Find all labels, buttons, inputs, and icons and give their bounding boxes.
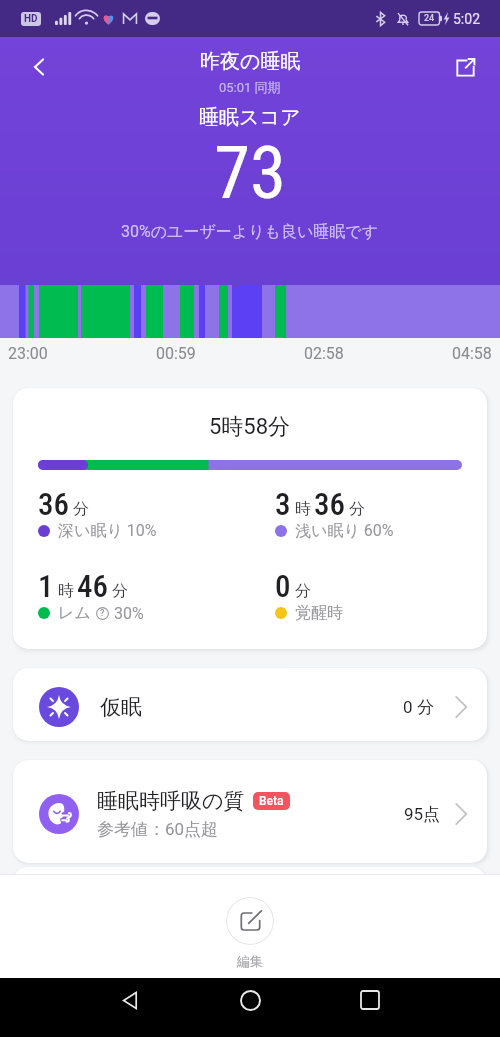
staticText: 5時58分 <box>209 413 291 441</box>
staticText: HD <box>24 13 38 25</box>
staticText: 04:58 <box>452 344 492 363</box>
staticText: 時 <box>58 581 74 601</box>
staticText: 5:02 <box>453 11 480 27</box>
staticText: 参考値：60点超 <box>97 819 219 840</box>
staticText: 睡眠時呼吸の質 <box>97 788 245 814</box>
staticText: 睡眠スコア <box>199 105 301 130</box>
staticText: 分 <box>417 697 434 718</box>
staticText: Beta <box>259 794 284 808</box>
staticText: 0 <box>403 697 413 717</box>
staticText: 36 <box>38 486 69 522</box>
button[interactable]: Share <box>444 46 486 88</box>
staticText: 36 <box>314 486 345 522</box>
staticText: 05:01 同期 <box>219 79 281 95</box>
staticText: 編集 <box>237 953 263 969</box>
staticText: 時 <box>295 499 311 519</box>
staticText: 分 <box>349 499 365 519</box>
staticText: 23:00 <box>8 344 48 363</box>
button[interactable]: Back <box>18 46 60 88</box>
staticText: 3 <box>275 486 291 522</box>
button[interactable]: 睡眠時呼吸の質 <box>13 760 487 863</box>
button[interactable]: 仮眠 <box>13 668 487 741</box>
button[interactable]: Home <box>228 978 272 1022</box>
staticText: 02:58 <box>304 344 344 363</box>
staticText: 昨夜の睡眠 <box>200 49 301 74</box>
staticText: 73 <box>214 130 287 216</box>
staticText: 95点 <box>404 804 441 825</box>
staticText: ? <box>100 608 105 619</box>
staticText: 分 <box>295 581 311 601</box>
staticText: 浅い眠り 60% <box>295 521 394 541</box>
staticText: 46 <box>77 568 108 604</box>
staticText: 分 <box>112 581 128 601</box>
staticText: 分 <box>73 499 89 519</box>
staticText: 仮眠 <box>100 694 142 720</box>
button[interactable]: Recents <box>348 978 392 1022</box>
staticText: 24 <box>424 13 435 24</box>
staticText: 深い眠り 10% <box>58 521 157 541</box>
button[interactable]: Back <box>108 978 152 1022</box>
staticText: 30% <box>114 604 144 623</box>
button[interactable]: 編集 <box>226 897 274 945</box>
staticText: レム <box>58 603 91 623</box>
staticText: 0 <box>275 568 291 604</box>
staticText: 1 <box>38 568 54 604</box>
staticText: 00:59 <box>156 344 196 363</box>
staticText: 覚醒時 <box>295 603 343 623</box>
staticText: 30%のユーザーよりも良い睡眠です <box>121 222 379 242</box>
